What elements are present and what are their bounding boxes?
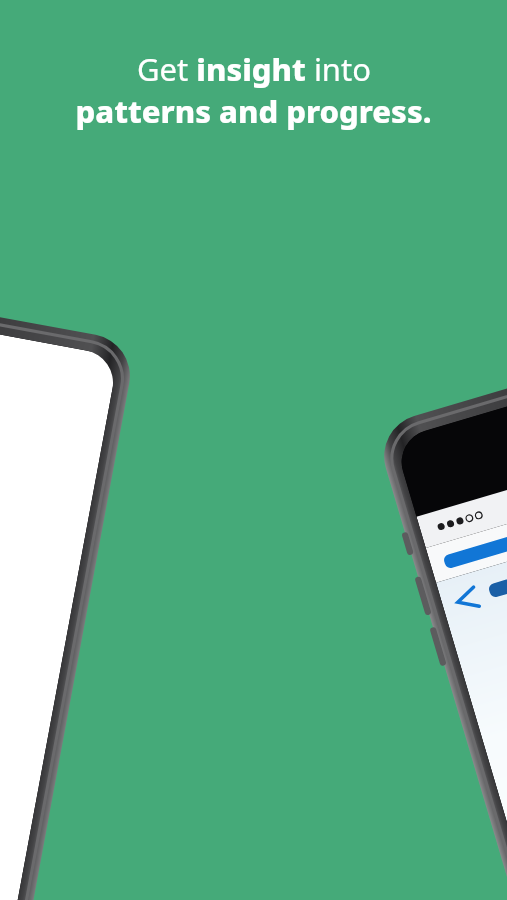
staticText: Get insight into [137, 48, 371, 90]
staticText: patterns and progress. [75, 90, 432, 132]
